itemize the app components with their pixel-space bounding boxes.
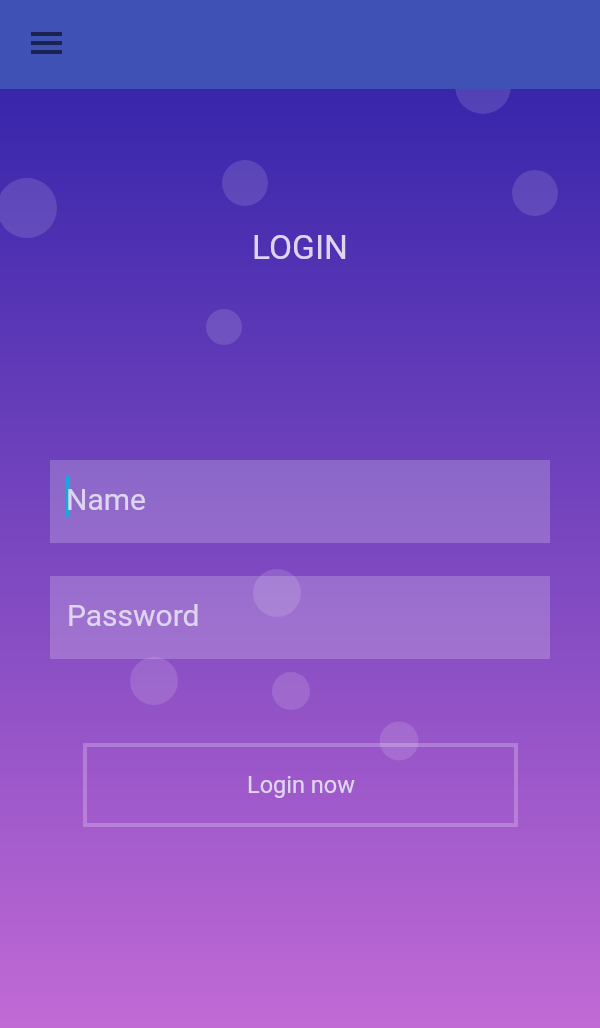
button[interactable]: Open navigation menu: [18, 20, 75, 65]
staticText: Name: [66, 482, 146, 517]
staticText: Password: [67, 598, 200, 633]
button[interactable]: Password: [50, 576, 550, 659]
staticText: Login now: [247, 771, 355, 799]
staticText: LOGIN: [0, 228, 600, 267]
button[interactable]: Login now: [83, 743, 518, 827]
button[interactable]: Name: [50, 460, 550, 543]
